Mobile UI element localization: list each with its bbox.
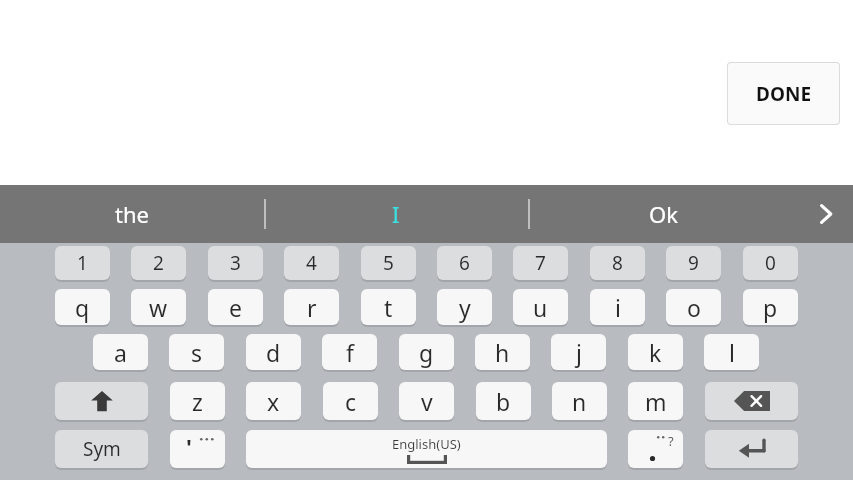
staticText: the: [115, 199, 149, 229]
staticText: o: [687, 292, 701, 323]
staticText: y: [459, 292, 471, 323]
button[interactable]: 9: [666, 246, 721, 280]
staticText: x: [267, 386, 280, 417]
staticText: 0: [765, 250, 776, 276]
staticText: I: [392, 199, 400, 229]
button[interactable]: q: [55, 289, 110, 325]
staticText: b: [496, 386, 511, 417]
staticText: a: [114, 337, 127, 368]
button[interactable]: z: [170, 382, 225, 420]
button[interactable]: Backspace: [705, 382, 798, 420]
button[interactable]: More suggestions: [798, 185, 853, 243]
button[interactable]: b: [476, 382, 531, 420]
button[interactable]: I: [264, 185, 528, 243]
button[interactable]: i: [590, 289, 645, 325]
button[interactable]: Enter: [705, 430, 798, 468]
button[interactable]: k: [628, 334, 683, 370]
staticText: i: [615, 292, 621, 323]
staticText: ': [186, 431, 192, 461]
button[interactable]: l: [704, 334, 759, 370]
staticText: z: [192, 386, 203, 417]
button[interactable]: m: [628, 382, 683, 420]
staticText: p: [763, 292, 778, 323]
button[interactable]: d: [246, 334, 301, 370]
button[interactable]: t: [361, 289, 416, 325]
button[interactable]: c: [323, 382, 378, 420]
button[interactable]: 0: [743, 246, 798, 280]
button[interactable]: u: [513, 289, 568, 325]
staticText: n: [572, 386, 587, 417]
staticText: f: [346, 337, 354, 368]
staticText: k: [649, 337, 662, 368]
button[interactable]: DONE: [727, 62, 840, 125]
staticText: d: [266, 337, 281, 368]
staticText: 6: [459, 250, 470, 276]
button[interactable]: 4: [284, 246, 339, 280]
button[interactable]: j: [551, 334, 606, 370]
button[interactable]: 3: [208, 246, 263, 280]
staticText: Sym: [83, 436, 121, 462]
button[interactable]: 1: [55, 246, 110, 280]
button[interactable]: 6: [437, 246, 492, 280]
button[interactable]: g: [399, 334, 454, 370]
button[interactable]: o: [666, 289, 721, 325]
staticText: ?: [668, 432, 674, 450]
staticText: r: [307, 292, 317, 323]
button[interactable]: n: [552, 382, 607, 420]
button[interactable]: 2: [131, 246, 186, 280]
button[interactable]: 5: [361, 246, 416, 280]
staticText: t: [384, 292, 393, 323]
staticText: 8: [612, 250, 623, 276]
button[interactable]: r: [284, 289, 339, 325]
button[interactable]: Ok: [528, 185, 798, 243]
staticText: 1: [77, 250, 88, 276]
staticText: DONE: [756, 81, 812, 107]
button[interactable]: h: [475, 334, 530, 370]
staticText: m: [645, 386, 667, 417]
button[interactable]: 7: [513, 246, 568, 280]
staticText: l: [729, 337, 735, 368]
staticText: 2: [153, 250, 164, 276]
staticText: 3: [230, 250, 241, 276]
button[interactable]: p: [743, 289, 798, 325]
button[interactable]: Sym: [55, 430, 148, 468]
button[interactable]: a: [93, 334, 148, 370]
staticText: h: [495, 337, 510, 368]
staticText: Ok: [649, 199, 678, 229]
staticText: g: [419, 337, 434, 368]
button[interactable]: x: [246, 382, 301, 420]
staticText: u: [533, 292, 548, 323]
button[interactable]: the: [0, 185, 264, 243]
staticText: j: [576, 337, 582, 368]
button[interactable]: s: [169, 334, 224, 370]
button[interactable]: y: [437, 289, 492, 325]
staticText: 4: [306, 250, 317, 276]
staticText: w: [149, 292, 168, 323]
staticText: 7: [535, 250, 546, 276]
staticText: 5: [383, 250, 394, 276]
button[interactable]: Period: [628, 430, 683, 468]
button[interactable]: v: [399, 382, 454, 420]
button[interactable]: e: [208, 289, 263, 325]
staticText: q: [75, 292, 90, 323]
button[interactable]: 8: [590, 246, 645, 280]
staticText: English(US): [392, 435, 461, 453]
staticText: v: [421, 386, 433, 417]
button[interactable]: Space, English (US): [246, 430, 607, 468]
staticText: c: [345, 386, 357, 417]
button[interactable]: Shift: [55, 382, 148, 420]
button[interactable]: Apostrophe: [170, 430, 225, 468]
staticText: s: [191, 337, 203, 368]
button[interactable]: f: [322, 334, 377, 370]
staticText: 9: [688, 250, 699, 276]
button[interactable]: w: [131, 289, 186, 325]
staticText: e: [229, 292, 242, 323]
